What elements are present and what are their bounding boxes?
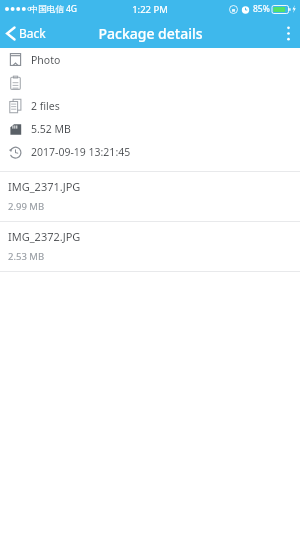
button[interactable]: 2017-09-19 13:21:45 [0, 140, 300, 163]
staticText: 85% [253, 3, 270, 15]
button[interactable]: IMG_2372.JPG [0, 222, 300, 272]
staticText: 1:22 PM [132, 3, 168, 16]
button[interactable]: Photo [0, 48, 300, 71]
button[interactable]: IMG_2371.JPG [0, 172, 300, 222]
staticText: Package details [98, 24, 203, 43]
staticText: 2.99 MB [8, 200, 45, 213]
staticText: IMG_2371.JPG [8, 179, 81, 194]
button[interactable]: Back [0, 21, 54, 45]
staticText: 5.52 MB [31, 122, 71, 136]
button[interactable]: More options [277, 21, 300, 46]
staticText: 4G [66, 3, 78, 15]
staticText: 2 files [31, 99, 60, 113]
staticText: 2017-09-19 13:21:45 [31, 145, 131, 159]
staticText: Back [19, 25, 46, 41]
button[interactable]: 5.52 MB [0, 117, 300, 140]
button[interactable]: 2 files [0, 94, 300, 117]
staticText: Photo [31, 53, 61, 67]
button[interactable] [0, 71, 300, 94]
staticText: 中国电信 [30, 4, 64, 15]
staticText: IMG_2372.JPG [8, 229, 81, 244]
staticText: 2.53 MB [8, 250, 45, 263]
